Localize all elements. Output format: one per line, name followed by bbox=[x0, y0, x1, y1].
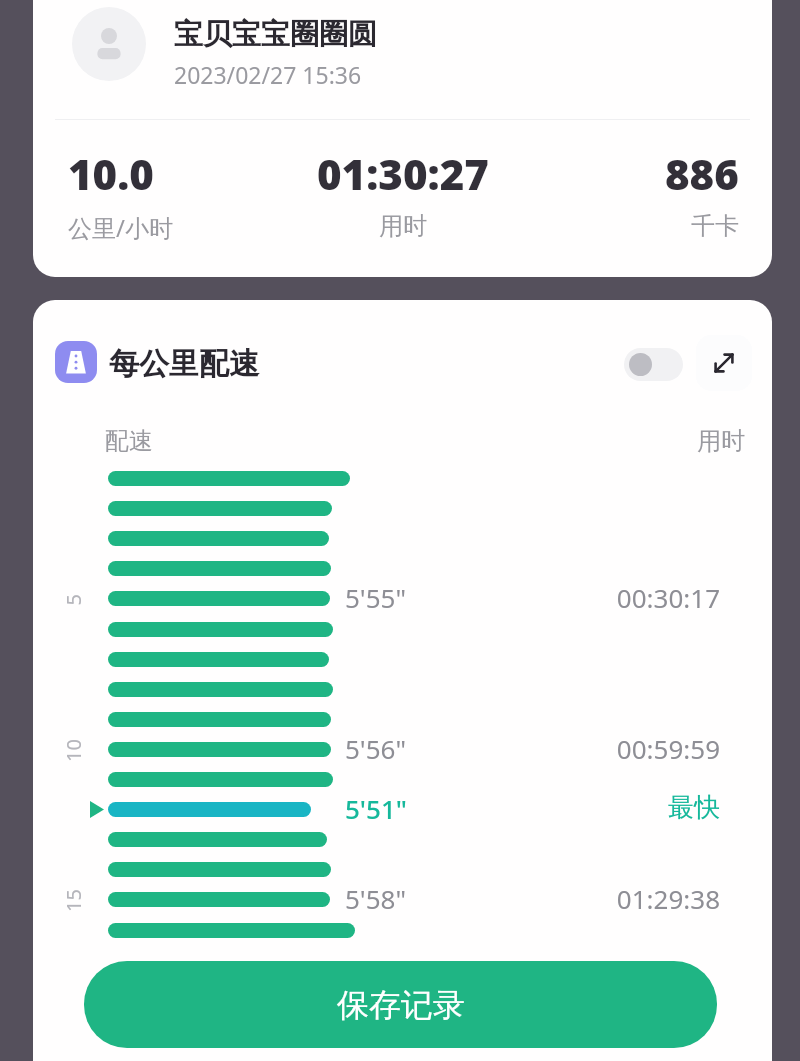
staticText: 10.0 bbox=[68, 145, 154, 202]
staticText: 用时 bbox=[697, 426, 745, 456]
staticText: 5 bbox=[59, 593, 86, 605]
staticText: 886 bbox=[665, 145, 739, 202]
staticText: 01:29:38 bbox=[616, 881, 720, 916]
staticText: 00:30:17 bbox=[616, 580, 720, 615]
staticText: 宝贝宝宝圈圈圆 bbox=[174, 16, 377, 53]
staticText: 15 bbox=[60, 889, 87, 912]
staticText: 5'58" bbox=[345, 881, 407, 916]
staticText: 10 bbox=[60, 739, 87, 762]
staticText: 公里/小时 bbox=[68, 211, 173, 244]
staticText: 5'55" bbox=[345, 580, 407, 615]
staticText: 5'51" bbox=[345, 791, 407, 826]
button[interactable]: Expand bbox=[696, 335, 752, 391]
staticText: 每公里配速 bbox=[109, 345, 259, 383]
staticText: 最快 bbox=[668, 791, 720, 824]
staticText: 配速 bbox=[105, 426, 153, 456]
button[interactable]: 保存记录 bbox=[84, 961, 717, 1048]
staticText: 保存记录 bbox=[337, 985, 465, 1025]
staticText: 千卡 bbox=[691, 211, 739, 241]
staticText: 01:30:27 bbox=[317, 145, 489, 202]
staticText: 00:59:59 bbox=[616, 731, 720, 766]
staticText: 5'56" bbox=[345, 731, 407, 766]
button[interactable]: Toggle pace chart bbox=[624, 348, 683, 381]
staticText: 2023/02/27 15:36 bbox=[174, 59, 362, 90]
staticText: 用时 bbox=[379, 211, 427, 241]
